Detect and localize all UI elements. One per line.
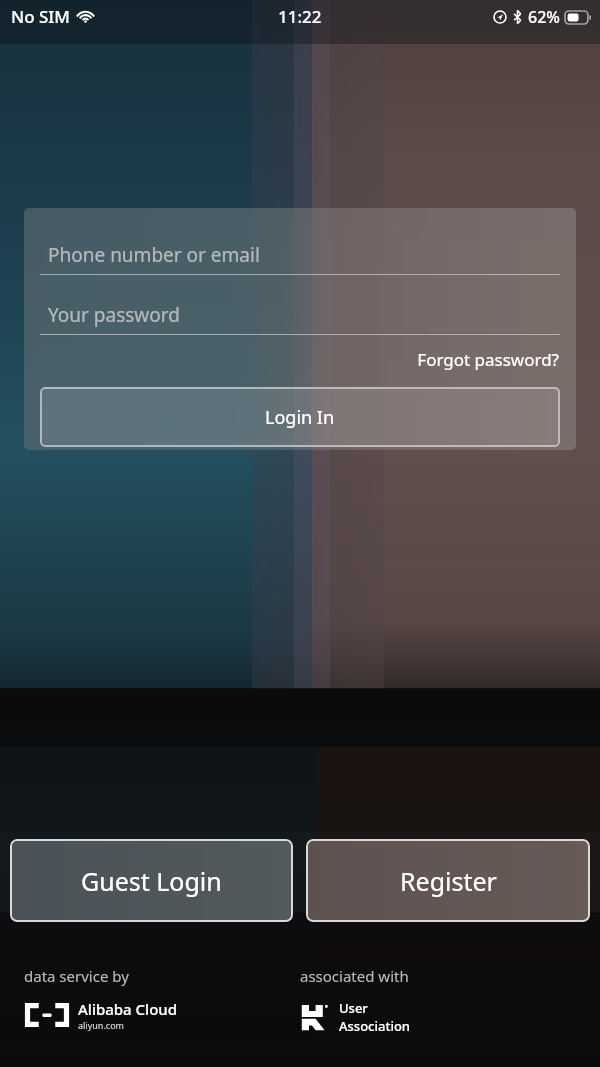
button[interactable]: Login In [40,387,560,447]
staticText: Alibaba Cloud [78,999,178,1019]
staticText: Your password [48,302,180,328]
staticText: 62% [528,6,560,28]
button[interactable]: Phone number or email [40,240,560,275]
staticText: associated with [300,966,409,986]
button[interactable]: Register [306,839,590,922]
staticText: User [339,999,368,1017]
staticText: data service by [24,966,129,986]
staticText: aliyun.com [78,1019,124,1031]
staticText: Guest Login [81,864,222,898]
button[interactable]: Guest Login [10,839,293,922]
button[interactable]: Your password [40,300,560,335]
button[interactable]: Forgot password? [416,346,560,373]
staticText: 11:22 [278,5,322,28]
staticText: No SIM [11,5,70,28]
staticText: Register [400,864,497,898]
staticText: Association [339,1017,411,1035]
staticText: Login In [265,405,335,430]
staticText: Phone number or email [48,242,260,268]
